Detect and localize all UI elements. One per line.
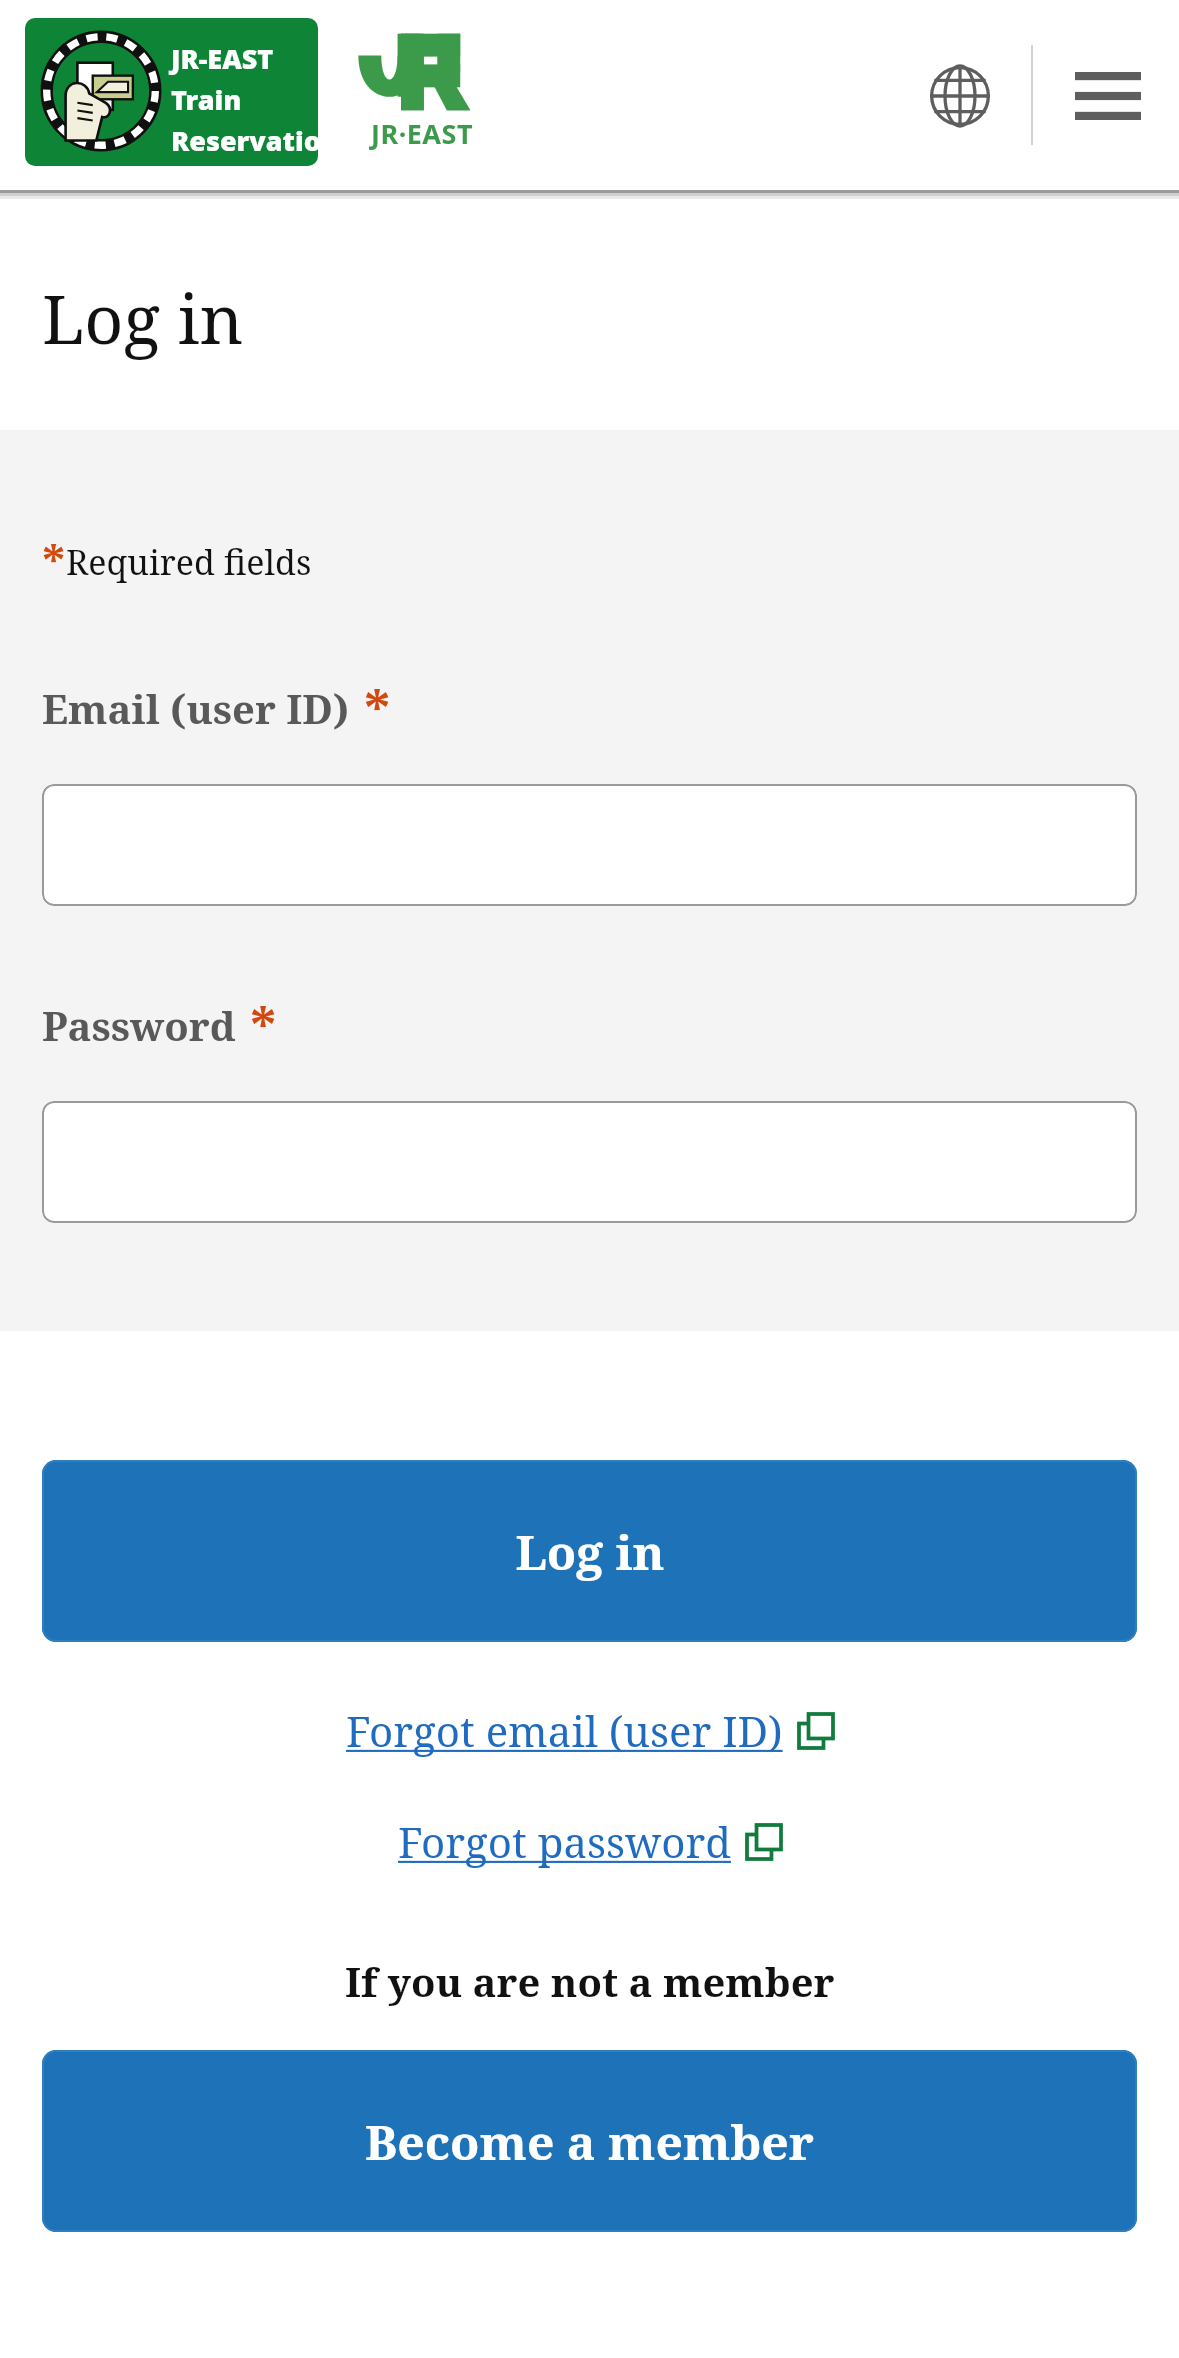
button[interactable]: JR·EAST	[348, 26, 496, 154]
staticText: *	[42, 530, 66, 593]
button[interactable]: Become a member	[42, 2050, 1137, 2232]
button[interactable]: JR-EAST	[25, 18, 318, 166]
button[interactable]	[42, 1101, 1137, 1223]
button[interactable]: Forgot email (user ID)	[346, 1702, 833, 1759]
staticText: Required fields	[66, 539, 312, 585]
button[interactable]: Forgot password	[398, 1813, 781, 1870]
staticText: Become a member	[365, 2109, 814, 2174]
staticText: Train	[171, 81, 242, 118]
staticText: Log in	[515, 1519, 665, 1584]
button[interactable]	[42, 784, 1137, 906]
button[interactable]: Language	[916, 52, 1004, 140]
staticText: Reservation	[171, 122, 318, 159]
staticText: Email (user ID)	[42, 681, 350, 735]
button[interactable]: Menu	[1064, 52, 1152, 140]
button[interactable]: Log in	[42, 1460, 1137, 1642]
staticText: Forgot password	[398, 1813, 731, 1870]
staticText: *	[364, 673, 391, 744]
staticText: Log in	[42, 271, 244, 364]
staticText: JR·EAST	[371, 115, 473, 152]
staticText: JR-EAST	[171, 40, 274, 77]
staticText: Forgot email (user ID)	[346, 1702, 783, 1759]
staticText: Password	[42, 998, 236, 1052]
staticText: *	[250, 990, 277, 1061]
staticText: If you are not a member	[345, 1954, 835, 2008]
